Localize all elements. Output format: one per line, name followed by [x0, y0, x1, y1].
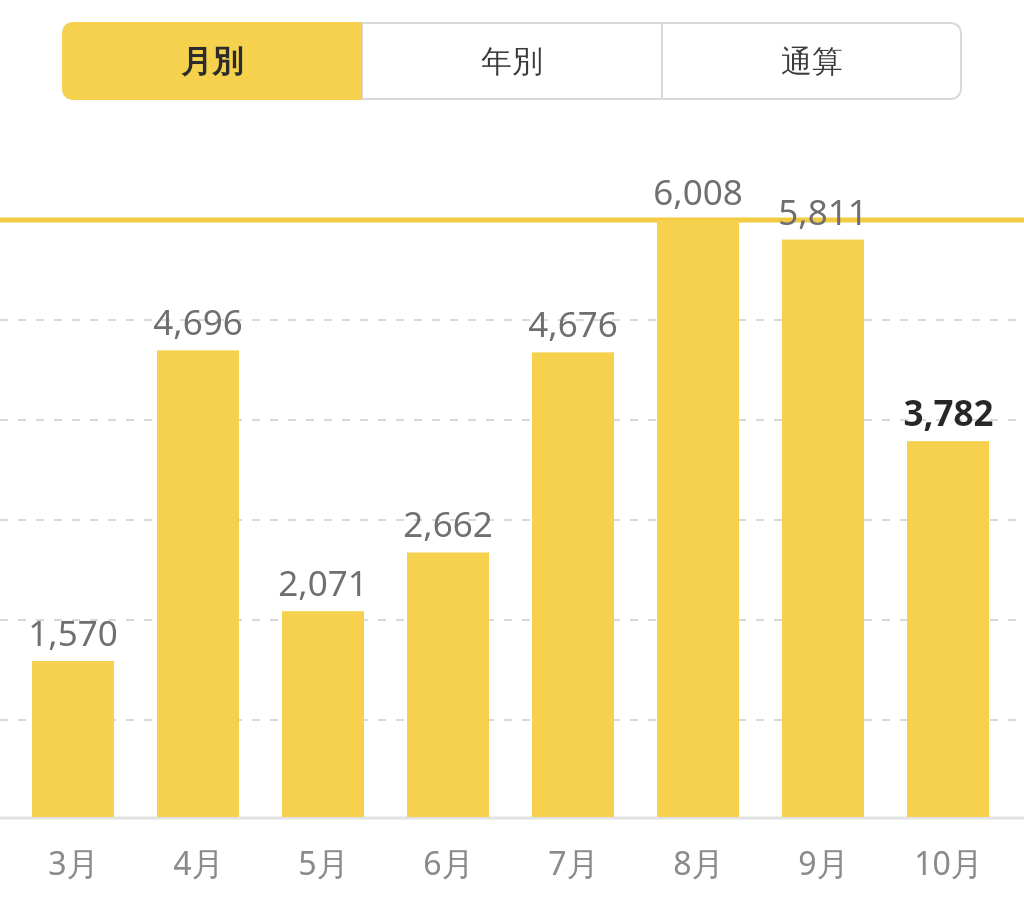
staticText: 7月 [548, 841, 599, 885]
staticText: 年別 [481, 42, 543, 81]
staticText: 6,008 [653, 168, 743, 214]
button[interactable]: 月別 [62, 22, 362, 100]
staticText: 10月 [914, 841, 983, 885]
staticText: 4,676 [528, 300, 618, 346]
staticText: 6月 [423, 841, 474, 885]
staticText: 通算 [781, 42, 843, 81]
staticText: 2,071 [278, 559, 368, 605]
staticText: 9月 [798, 841, 849, 885]
button[interactable]: 通算 [662, 22, 962, 100]
staticText: 3月 [48, 841, 99, 885]
button[interactable]: 年別 [362, 22, 662, 100]
staticText: 月別 [181, 42, 243, 81]
staticText: 5,811 [778, 188, 868, 234]
staticText: 3,782 [903, 389, 994, 435]
staticText: 5月 [298, 841, 349, 885]
staticText: 1,570 [28, 609, 118, 655]
staticText: 8月 [673, 841, 724, 885]
staticText: 2,662 [403, 500, 493, 546]
staticText: 4月 [173, 841, 224, 885]
staticText: 4,696 [153, 298, 243, 344]
